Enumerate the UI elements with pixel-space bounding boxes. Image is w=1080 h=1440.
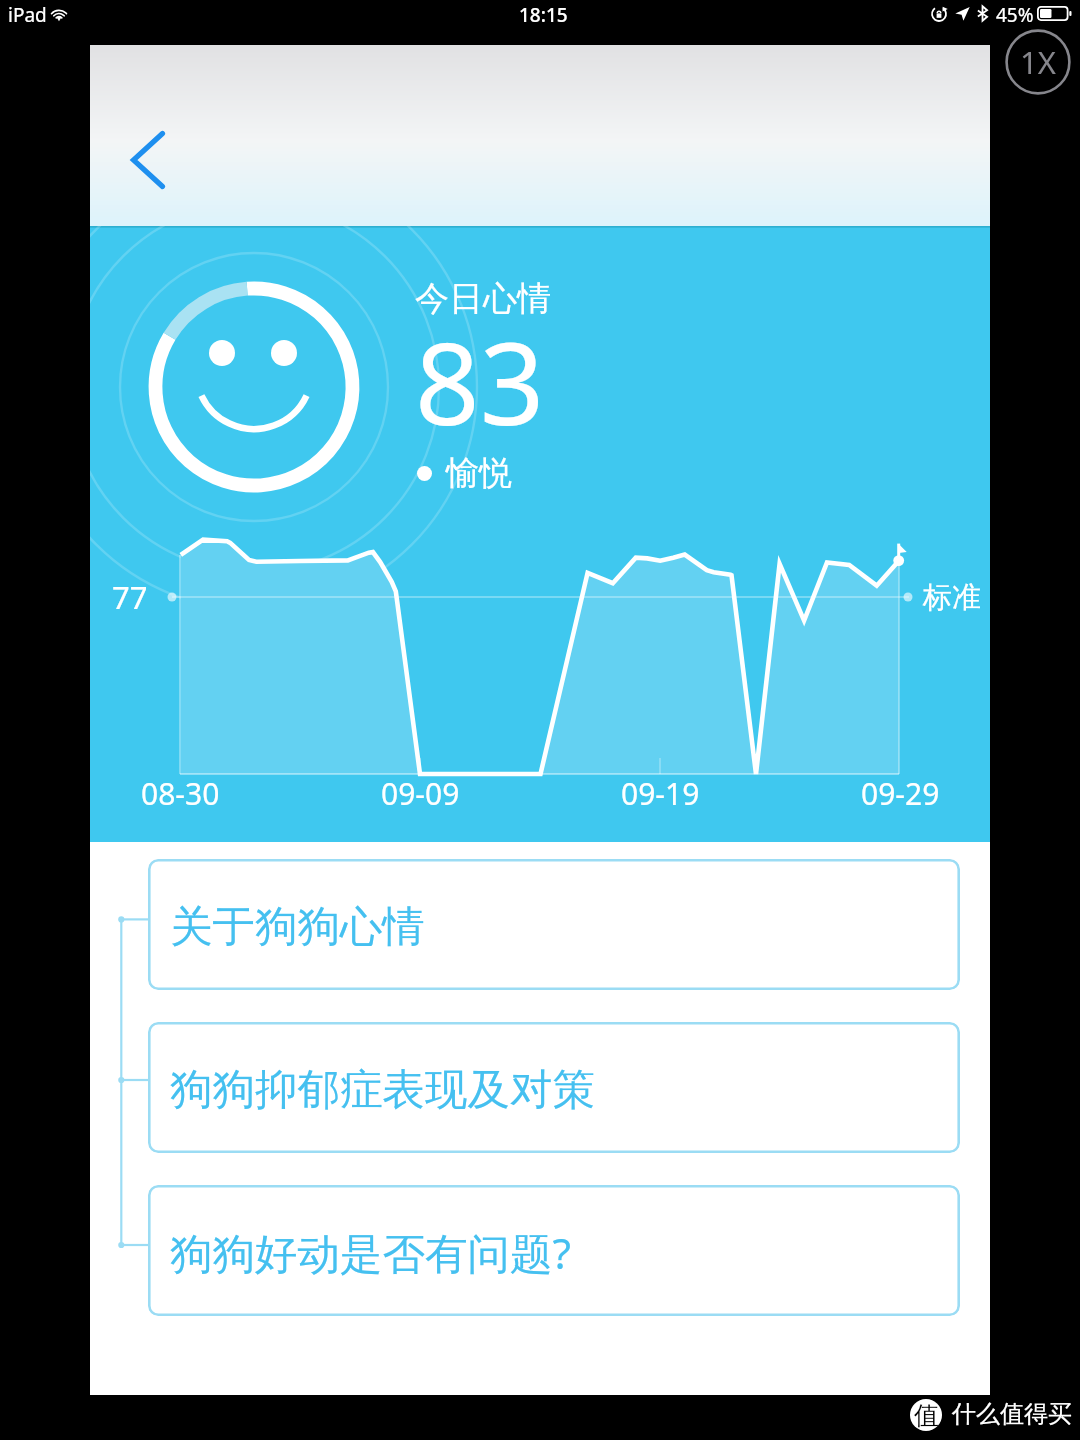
- button[interactable]: 关于狗狗心情: [148, 859, 960, 990]
- staticText: iPad: [8, 2, 47, 28]
- staticText: 1X: [1020, 41, 1056, 83]
- button[interactable]: 狗狗好动是否有问题?: [148, 1185, 960, 1316]
- staticText: 值: [914, 1400, 939, 1431]
- staticText: 09-09: [381, 773, 460, 814]
- button[interactable]: 狗狗抑郁症表现及对策: [148, 1022, 960, 1153]
- staticText: 狗狗好动是否有问题?: [170, 1224, 571, 1282]
- staticText: 09-29: [861, 773, 940, 814]
- staticText: 08-30: [141, 773, 220, 814]
- staticText: 什么值得买: [952, 1399, 1072, 1429]
- staticText: 83: [415, 304, 545, 458]
- staticText: 今日心情: [415, 277, 551, 320]
- staticText: 愉悦: [446, 452, 512, 494]
- button[interactable]: Zoom 1X: [1005, 29, 1071, 95]
- staticText: 标准: [923, 579, 981, 616]
- button[interactable]: Back: [106, 112, 190, 208]
- staticText: 18:15: [519, 2, 568, 28]
- staticText: 狗狗抑郁症表现及对策: [170, 1063, 595, 1117]
- staticText: 09-19: [621, 773, 700, 814]
- staticText: 关于狗狗心情: [170, 900, 425, 954]
- staticText: 77: [112, 576, 148, 618]
- staticText: 45%: [996, 2, 1034, 28]
